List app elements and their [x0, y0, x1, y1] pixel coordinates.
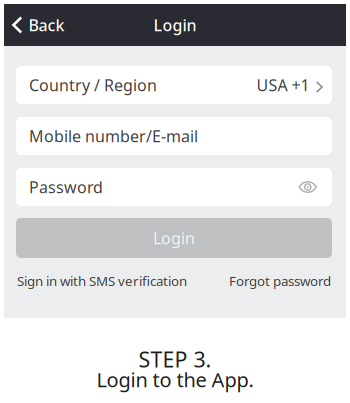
staticText: Mobile number/E-mail	[29, 125, 198, 147]
staticText: Back	[29, 14, 65, 36]
button[interactable]: Back	[4, 4, 75, 46]
button[interactable]: Show password	[298, 182, 317, 192]
button[interactable]: Mobile number/E-mail	[16, 117, 332, 155]
button[interactable]: Country / Region	[16, 66, 332, 104]
staticText: Sign in with SMS verification	[17, 272, 187, 290]
button[interactable]: Login	[16, 218, 332, 258]
button[interactable]: Password	[16, 168, 332, 206]
staticText: Forgot password	[229, 272, 331, 290]
staticText: STEP 3.	[138, 345, 211, 373]
staticText: USA +1	[257, 74, 310, 96]
staticText: Country / Region	[29, 74, 157, 96]
staticText: Login	[153, 14, 196, 36]
button[interactable]: Forgot password	[229, 272, 331, 290]
staticText: Login	[153, 227, 195, 249]
staticText: Login to the App.	[96, 366, 253, 393]
button[interactable]: Sign in with SMS verification	[17, 272, 187, 290]
staticText: Password	[29, 176, 103, 198]
